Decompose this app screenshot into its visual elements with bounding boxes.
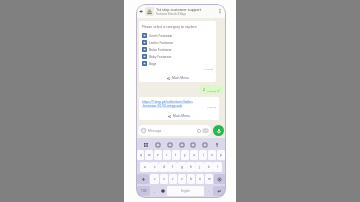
staticText: b [190, 177, 192, 181]
button[interactable]: t [172, 150, 180, 160]
button[interactable]: c [169, 174, 177, 184]
staticText: k [208, 165, 210, 169]
staticText: 1st step customer support [156, 7, 202, 12]
button[interactable]: o [208, 150, 216, 160]
button[interactable]: Back [138, 8, 145, 15]
staticText: g [181, 165, 183, 169]
button[interactable]: b [187, 174, 195, 184]
staticText: w [148, 153, 151, 157]
button[interactable]: e [154, 150, 162, 160]
staticText: l [217, 165, 218, 169]
staticText: v [181, 177, 183, 181]
staticText: q [140, 153, 142, 157]
button[interactable]: Keyboard tool 5 [189, 141, 196, 148]
staticText: n [199, 177, 201, 181]
staticText: e [157, 153, 159, 157]
button[interactable]: Camera [203, 128, 208, 133]
button[interactable]: Shift [137, 174, 149, 184]
button[interactable]: Keyboard tool 2 [154, 141, 161, 148]
staticText: u [193, 153, 195, 157]
staticText: Main Menu [172, 76, 189, 80]
staticText: z [154, 177, 156, 181]
button[interactable]: Keyboard tool 4 [178, 141, 185, 148]
button[interactable]: Enter [213, 186, 225, 196]
button[interactable]: u [190, 150, 198, 160]
button[interactable]: Main Menu [139, 111, 219, 120]
staticText: i [203, 153, 204, 157]
staticText: Message [148, 129, 162, 133]
button[interactable]: g [177, 162, 186, 172]
staticText: t [175, 153, 177, 157]
button[interactable]: d [159, 162, 168, 172]
staticText: a [144, 165, 146, 169]
staticText: ?123 [141, 189, 147, 193]
staticText: -footwear-50-50-mega-sale [142, 104, 183, 108]
button[interactable]: Keyboard tool 7 [213, 141, 220, 148]
button[interactable]: v [178, 174, 186, 184]
button[interactable]: Keyboard tool 3 [166, 141, 173, 148]
button[interactable]: Attach [196, 128, 201, 133]
button[interactable]: 2 [203, 87, 220, 92]
button[interactable]: n [196, 174, 204, 184]
staticText: o [211, 153, 213, 157]
staticText: j [199, 165, 200, 169]
button[interactable]: k [204, 162, 213, 172]
staticText: s [154, 165, 156, 169]
staticText: Please select a category to explore [142, 24, 197, 29]
button[interactable]: https://1step.pk/collections/ladies [139, 97, 219, 111]
button[interactable]: ?123 [137, 186, 150, 196]
staticText: 1:34 PM [207, 105, 216, 108]
staticText: y [184, 153, 186, 157]
staticText: 2 [203, 87, 205, 92]
staticText: 1:34 PM [207, 89, 216, 92]
button[interactable]: , [151, 186, 158, 196]
button[interactable]: j [195, 162, 204, 172]
button[interactable]: y [181, 150, 189, 160]
button[interactable]: w [145, 150, 153, 160]
button[interactable]: a [140, 162, 150, 172]
staticText: , [154, 189, 155, 193]
button[interactable]: Please select a category to explore [139, 21, 216, 73]
staticText: Gents Footwear [149, 34, 173, 38]
button[interactable]: p [217, 150, 225, 160]
staticText: h [190, 165, 192, 169]
staticText: p [220, 153, 222, 157]
button[interactable]: x [160, 174, 168, 184]
button[interactable]: s [150, 162, 159, 172]
button[interactable]: Keyboard tool 1 [142, 141, 149, 148]
button[interactable]: m [205, 174, 213, 184]
staticText: English [181, 189, 190, 193]
button[interactable]: q [137, 150, 144, 160]
button[interactable]: Keyboard tool 6 [201, 141, 208, 148]
staticText: Balas Footwear [149, 48, 172, 52]
button[interactable]: Main Menu [139, 73, 216, 82]
staticText: d [163, 165, 165, 169]
button[interactable]: English [167, 186, 204, 196]
button[interactable]: Emoji [159, 186, 166, 196]
button[interactable]: Backspace [214, 174, 225, 184]
staticText: . [208, 189, 209, 193]
staticText: Main Menu [173, 114, 190, 118]
button[interactable]: Voice message [213, 125, 224, 136]
staticText: Footwear Brands & Bags [156, 12, 186, 16]
staticText: 1:34 PM [204, 67, 213, 70]
button[interactable]: r [163, 150, 171, 160]
staticText: Bags [149, 62, 157, 66]
staticText: Ladies Footwear [149, 41, 174, 45]
staticText: c [172, 177, 174, 181]
staticText: m [208, 177, 211, 181]
button[interactable]: l [213, 162, 222, 172]
button[interactable]: Message [138, 125, 211, 136]
button[interactable]: z [150, 174, 159, 184]
button[interactable]: More options [216, 7, 224, 15]
button[interactable]: i [199, 150, 207, 160]
staticText: r [166, 153, 168, 157]
staticText: f [172, 165, 174, 169]
staticText: https://1step.pk/collections/ladies [142, 100, 193, 104]
button[interactable]: h [186, 162, 195, 172]
staticText: x [163, 177, 165, 181]
button[interactable]: f [168, 162, 177, 172]
staticText: Baby Footwear [149, 55, 172, 59]
